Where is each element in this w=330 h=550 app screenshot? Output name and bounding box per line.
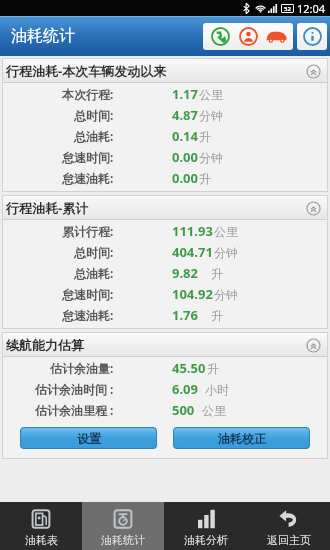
- staticText: 104.92: [172, 285, 213, 303]
- staticText: 升: [199, 129, 211, 144]
- staticText: 怠速时间:: [62, 149, 114, 165]
- button[interactable]: 累计行程:: [2, 220, 328, 241]
- staticText: 估计余油量:: [50, 360, 114, 376]
- staticText: 怠速油耗:: [62, 170, 114, 186]
- staticText: 本次行程:: [62, 86, 114, 102]
- button[interactable]: 设置: [20, 427, 157, 449]
- staticText: 1.17: [172, 85, 198, 103]
- button[interactable]: 总时间:: [2, 241, 328, 262]
- staticText: 行程油耗-累计: [6, 199, 89, 217]
- button[interactable]: 怠速时间:: [2, 146, 328, 167]
- button[interactable]: 总时间:: [2, 104, 328, 125]
- staticText: 怠速油耗:: [62, 307, 114, 323]
- staticText: 油耗校正: [218, 431, 266, 446]
- staticText: 油耗表: [25, 533, 58, 547]
- staticText: 4.87: [172, 106, 198, 124]
- staticText: 0.00: [172, 169, 198, 187]
- staticText: 总时间:: [74, 107, 114, 123]
- button[interactable]: 行程油耗-累计: [2, 195, 328, 220]
- staticText: 111.93: [172, 222, 213, 240]
- button[interactable]: Car: [262, 23, 290, 50]
- staticText: 累计行程:: [62, 223, 114, 239]
- staticText: 公里: [199, 87, 223, 102]
- staticText: 油耗统计: [11, 26, 75, 46]
- button[interactable]: 总油耗:: [2, 125, 328, 146]
- button[interactable]: 总油耗:: [2, 262, 328, 283]
- staticText: 升: [207, 361, 219, 376]
- staticText: 设置: [77, 431, 101, 446]
- button[interactable]: 油耗分析: [164, 502, 247, 550]
- staticText: 1.76: [172, 306, 198, 324]
- button[interactable]: 估计余油里程 :: [2, 399, 328, 420]
- staticText: 小时: [205, 382, 229, 397]
- staticText: 6.09: [172, 380, 198, 398]
- staticText: 分钟: [199, 108, 223, 123]
- button[interactable]: 油耗校正: [173, 427, 310, 449]
- staticText: 估计余油里程 :: [35, 402, 114, 418]
- button[interactable]: Info: [297, 23, 327, 50]
- button[interactable]: 怠速时间:: [2, 283, 328, 304]
- button[interactable]: 怠速油耗:: [2, 304, 328, 325]
- staticText: 公里: [202, 403, 226, 418]
- staticText: 0.14: [172, 127, 198, 145]
- button[interactable]: 怠速油耗:: [2, 167, 328, 188]
- staticText: 500: [172, 401, 195, 419]
- staticText: 分钟: [214, 245, 238, 260]
- staticText: 油耗分析: [184, 533, 228, 547]
- staticText: 12:04: [297, 1, 326, 16]
- staticText: 9.82: [172, 264, 198, 282]
- staticText: 分钟: [199, 150, 223, 165]
- staticText: 油耗统计: [101, 533, 145, 547]
- staticText: 分钟: [214, 287, 238, 302]
- button[interactable]: 行程油耗-本次车辆发动以来: [2, 58, 328, 83]
- button[interactable]: 续航能力估算: [2, 332, 328, 357]
- staticText: 45.50: [172, 359, 206, 377]
- button[interactable]: 估计余油量:: [2, 357, 328, 378]
- button[interactable]: Contacts: [234, 23, 262, 50]
- staticText: 404.71: [172, 243, 213, 261]
- staticText: 0.00: [172, 148, 198, 166]
- staticText: 升: [211, 308, 223, 323]
- staticText: 公里: [214, 224, 238, 239]
- button[interactable]: Call: [206, 23, 234, 50]
- button[interactable]: 本次行程:: [2, 83, 328, 104]
- staticText: 总时间:: [74, 244, 114, 260]
- staticText: 升: [211, 266, 223, 281]
- staticText: 总油耗:: [74, 265, 114, 281]
- staticText: 升: [199, 171, 211, 186]
- button[interactable]: 返回主页: [247, 502, 330, 550]
- button[interactable]: 估计余油时间 :: [2, 378, 328, 399]
- button[interactable]: 油耗表: [0, 502, 82, 550]
- staticText: 总油耗:: [74, 128, 114, 144]
- staticText: 续航能力估算: [6, 337, 84, 353]
- staticText: 52: [284, 5, 291, 13]
- staticText: 返回主页: [267, 533, 311, 547]
- staticText: 估计余油时间 :: [35, 381, 114, 397]
- button[interactable]: 油耗统计: [82, 502, 164, 550]
- staticText: 行程油耗-本次车辆发动以来: [6, 62, 167, 80]
- staticText: 怠速时间:: [62, 286, 114, 302]
